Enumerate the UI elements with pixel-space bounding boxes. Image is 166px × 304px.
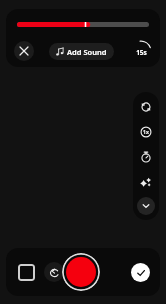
button[interactable]: Speed <box>136 122 156 142</box>
button[interactable]: Add Sound <box>49 43 114 60</box>
staticText: 15s <box>136 48 147 57</box>
button[interactable]: Done <box>131 263 150 282</box>
button[interactable]: Record <box>62 253 100 291</box>
button[interactable]: Undo <box>44 262 64 282</box>
staticText: 1x <box>143 129 149 136</box>
button[interactable]: Recording length 15 seconds <box>130 40 152 62</box>
button[interactable]: Flip camera <box>136 97 156 117</box>
button[interactable]: Close <box>14 41 34 61</box>
button[interactable]: Timer <box>136 147 156 167</box>
button[interactable]: Upload from gallery <box>18 264 35 281</box>
staticText: Add Sound <box>67 47 107 57</box>
button[interactable]: Expand tools <box>137 197 155 215</box>
button[interactable]: Effects <box>136 172 156 192</box>
